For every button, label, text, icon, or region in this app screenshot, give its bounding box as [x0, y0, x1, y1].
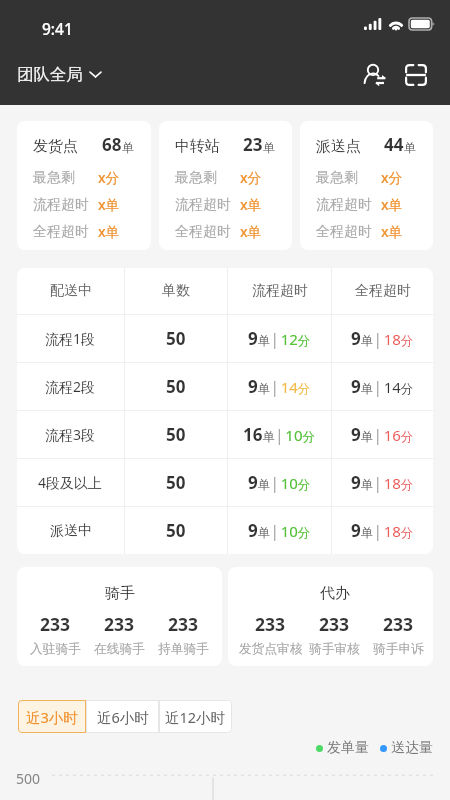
staticText: 单 [122, 140, 134, 155]
staticText: 9单|16分 [351, 423, 414, 446]
staticText: 流程3段 [45, 425, 96, 444]
staticText: 9单|10分 [248, 471, 311, 494]
staticText: 9单|10分 [248, 519, 311, 542]
staticText: 发货点审核 [239, 641, 302, 657]
staticText: 流程超时 [33, 196, 89, 214]
staticText: 持单骑手 [158, 641, 209, 657]
staticText: 流程超时 [175, 196, 231, 214]
staticText: 16单|10分 [243, 423, 316, 446]
staticText: 送达量 [391, 739, 433, 757]
staticText: 44 [384, 133, 404, 156]
staticText: 9单|18分 [351, 327, 414, 350]
staticText: 233 [383, 612, 414, 636]
staticText: 9单|14分 [351, 375, 414, 398]
staticText: 233 [40, 612, 71, 636]
staticText: 发货点 [33, 137, 78, 156]
button[interactable]: 4段及以上 [17, 459, 433, 506]
staticText: 50 [166, 375, 186, 398]
staticText: 50 [166, 327, 186, 350]
staticText: 流程1段 [45, 329, 96, 348]
staticText: 68 [102, 133, 122, 156]
staticText: 骑手申诉 [373, 641, 424, 657]
staticText: 近12小时 [165, 707, 226, 727]
staticText: 入驻骑手 [30, 641, 81, 657]
staticText: 骑手审核 [309, 641, 360, 657]
staticText: 单数 [162, 282, 190, 300]
staticText: 233 [319, 612, 350, 636]
staticText: 全程超时 [316, 223, 372, 241]
staticText: 全程超时 [175, 223, 231, 241]
staticText: 流程2段 [45, 377, 96, 396]
staticText: 近6小时 [97, 707, 149, 727]
staticText: 团队全局 [17, 64, 83, 85]
staticText: 全程超时 [355, 282, 411, 300]
staticText: x单 [381, 222, 403, 241]
staticText: 配送中 [50, 282, 92, 300]
staticText: x单 [98, 222, 120, 241]
staticText: 4段及以上 [38, 473, 103, 492]
staticText: 9单|18分 [351, 519, 414, 542]
staticText: 最急剩 [316, 169, 358, 187]
staticText: 50 [166, 423, 186, 446]
staticText: 9:41 [42, 18, 73, 39]
button[interactable]: 中转站 [159, 121, 292, 250]
button[interactable]: 流程3段 [17, 411, 433, 458]
staticText: 233 [255, 612, 286, 636]
button[interactable]: 发货点 [17, 121, 151, 250]
staticText: x单 [98, 195, 120, 214]
button[interactable]: 流程2段 [17, 363, 433, 410]
staticText: 近3小时 [26, 707, 78, 727]
staticText: 代办 [320, 584, 350, 603]
button[interactable]: 代办 [228, 567, 433, 666]
staticText: 派送点 [316, 137, 361, 156]
staticText: 最急剩 [175, 169, 217, 187]
staticText: 233 [104, 612, 135, 636]
staticText: 9单|14分 [248, 375, 311, 398]
staticText: x单 [240, 195, 262, 214]
staticText: 骑手 [105, 584, 135, 603]
staticText: x单 [240, 222, 262, 241]
button[interactable]: 流程1段 [17, 315, 433, 362]
staticText: 23 [243, 133, 263, 156]
button[interactable]: 近6小时 [86, 700, 159, 733]
staticText: 流程超时 [316, 196, 372, 214]
staticText: 派送中 [50, 522, 92, 540]
staticText: 233 [168, 612, 199, 636]
staticText: 在线骑手 [94, 641, 145, 657]
button[interactable]: Switch account [355, 60, 397, 98]
staticText: 发单量 [327, 739, 369, 757]
staticText: 9单|18分 [351, 471, 414, 494]
staticText: 单 [263, 140, 275, 155]
staticText: x单 [381, 195, 403, 214]
staticText: 50 [166, 471, 186, 494]
button[interactable]: 近12小时 [159, 700, 232, 733]
button[interactable]: Scan [397, 60, 450, 98]
button[interactable]: 派送中 [17, 507, 433, 554]
staticText: x分 [240, 168, 262, 187]
button[interactable]: 团队全局 [0, 60, 113, 97]
staticText: 流程超时 [252, 282, 308, 300]
staticText: 单 [404, 140, 416, 155]
staticText: 全程超时 [33, 223, 89, 241]
staticText: 50 [166, 519, 186, 542]
staticText: x分 [381, 168, 403, 187]
button[interactable]: 派送点 [300, 121, 433, 250]
button[interactable]: 骑手 [17, 567, 222, 666]
staticText: 9单|12分 [248, 327, 311, 350]
staticText: 最急剩 [33, 169, 75, 187]
button[interactable]: 近3小时 [18, 700, 86, 733]
staticText: 500 [16, 769, 41, 788]
staticText: x分 [98, 168, 120, 187]
staticText: 中转站 [175, 137, 220, 156]
